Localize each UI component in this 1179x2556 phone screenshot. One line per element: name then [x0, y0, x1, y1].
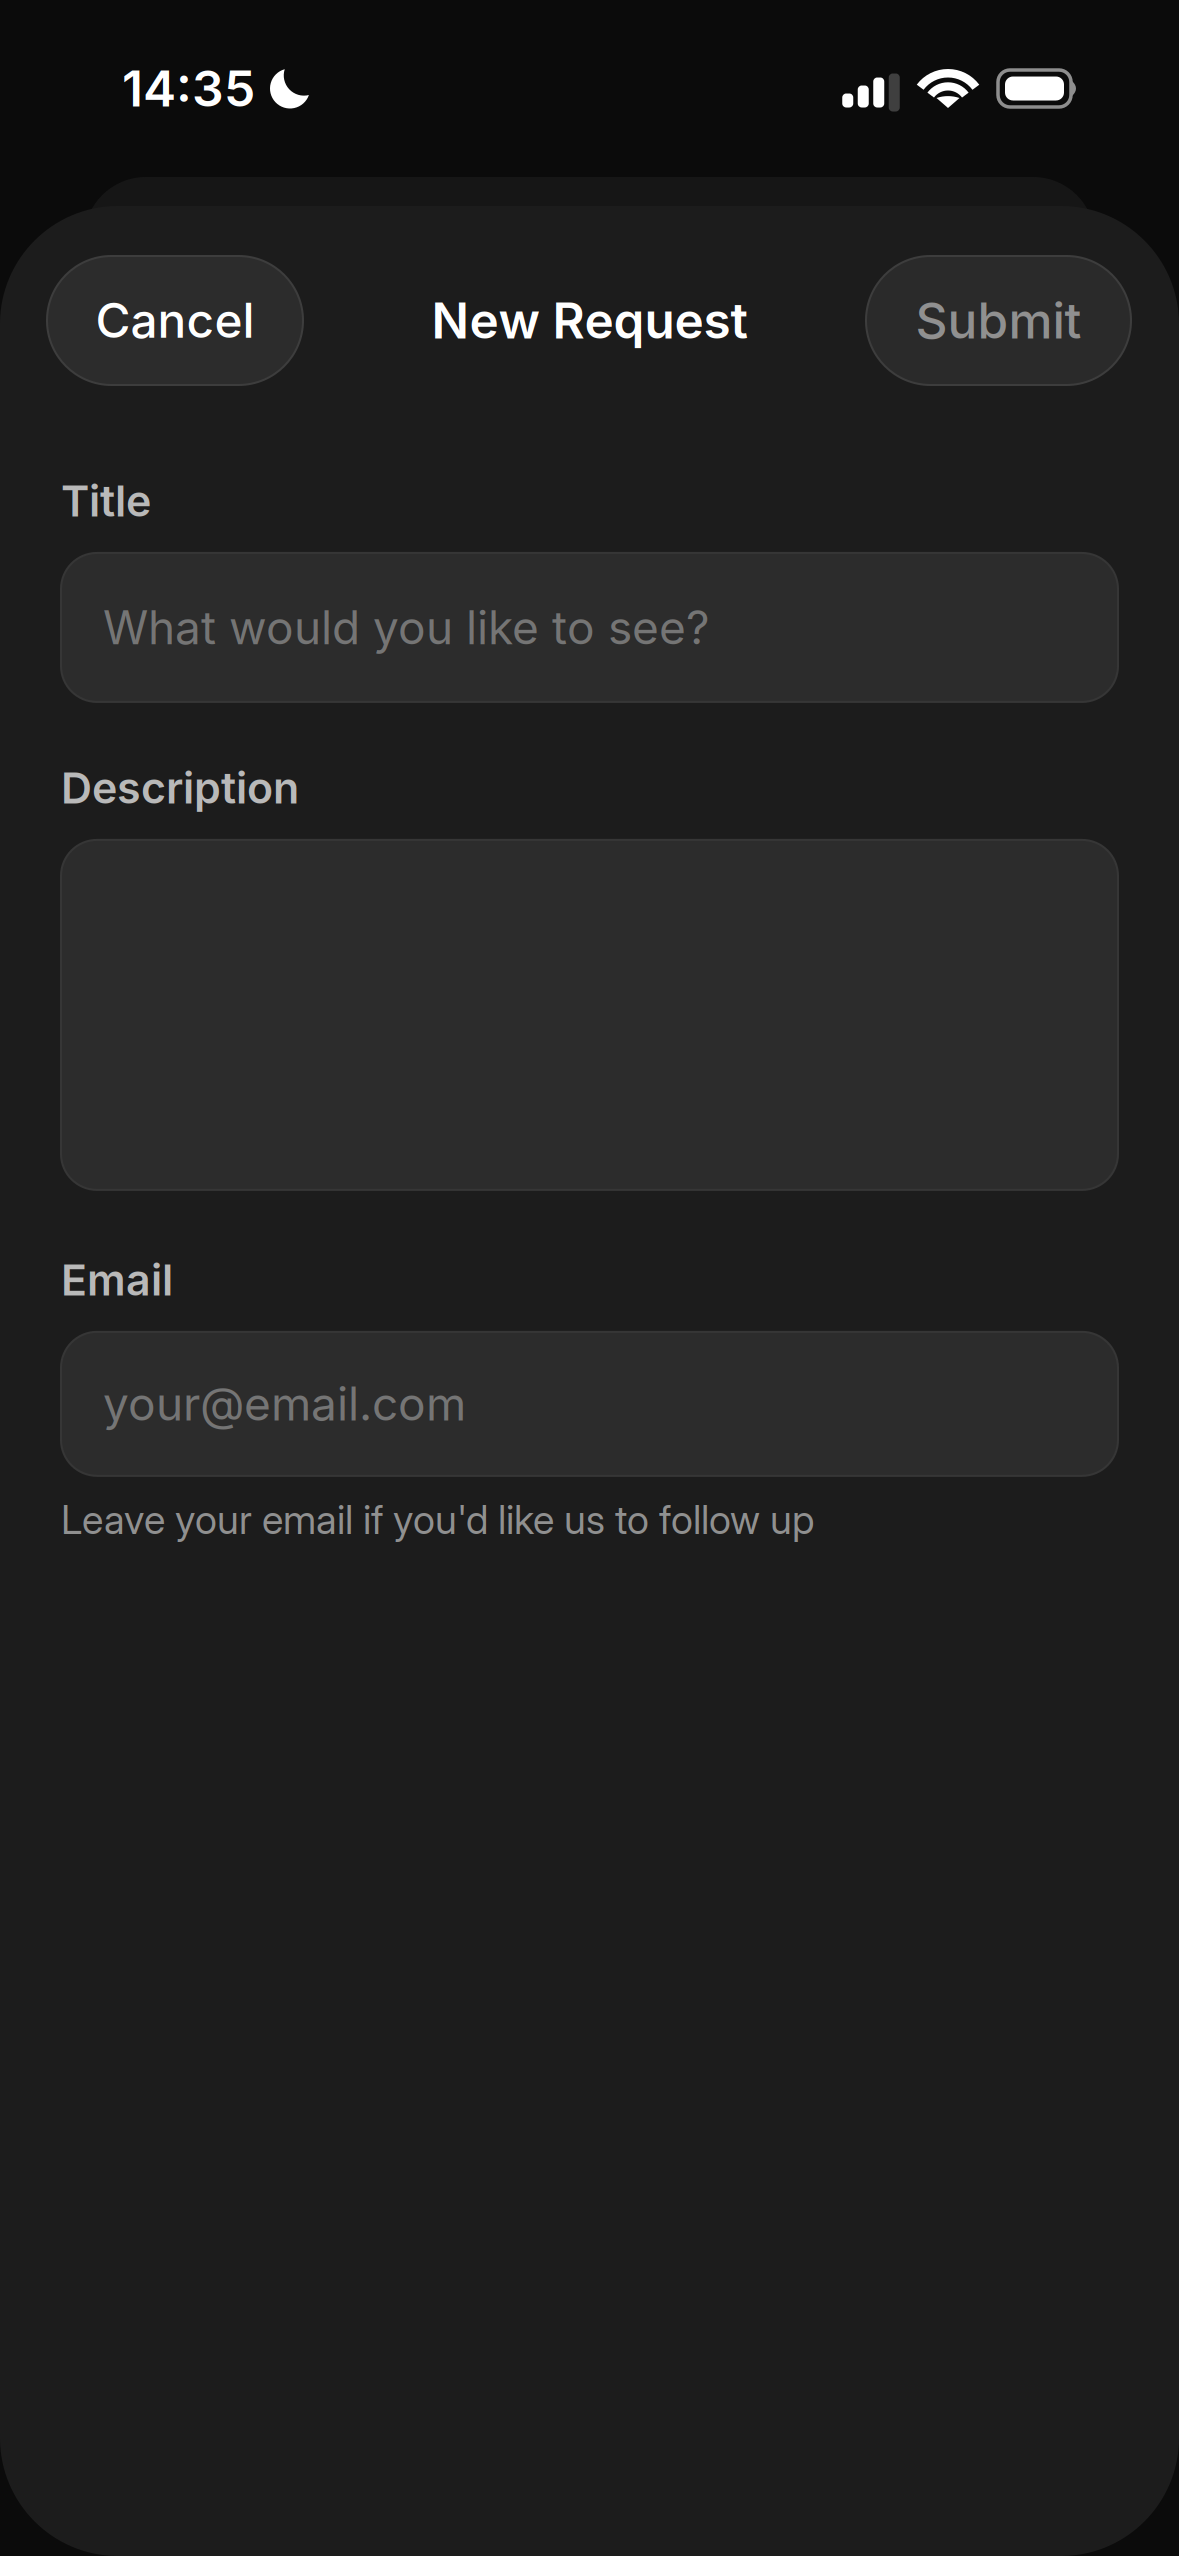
staticText: Email [61, 1254, 173, 1306]
staticText: Description [61, 762, 299, 814]
staticText: Title [61, 475, 151, 527]
staticText: Submit [915, 290, 1081, 350]
staticText: New Request [431, 291, 747, 350]
staticText: Cancel [95, 292, 254, 349]
staticText: What would you like to see? [103, 600, 710, 655]
button[interactable]: Submit [866, 256, 1131, 385]
staticText: your@email.com [103, 1376, 466, 1432]
button[interactable]: Cancel [47, 256, 303, 385]
staticText: Leave your email if you'd like us to fol… [61, 1496, 814, 1543]
staticText: 14:35 [122, 58, 255, 119]
